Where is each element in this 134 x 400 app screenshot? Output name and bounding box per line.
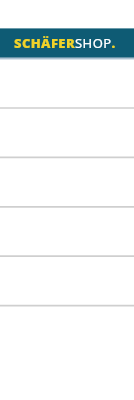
button[interactable]: List item 3	[0, 206, 134, 255]
staticText: SCHÄFERSHOP.	[14, 34, 116, 52]
button[interactable]: List item 1	[0, 108, 134, 157]
button[interactable]: List item 2	[0, 157, 134, 206]
button[interactable]: List item 5	[0, 304, 134, 353]
button[interactable]: List item 4	[0, 255, 134, 304]
button[interactable]: SCHÄFERSHOP.	[0, 28, 118, 57]
button[interactable]: Menu	[118, 28, 134, 57]
